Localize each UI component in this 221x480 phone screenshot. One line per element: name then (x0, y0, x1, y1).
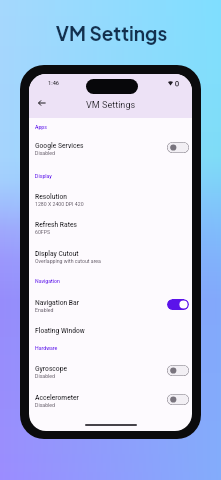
button[interactable]: Navigation Bar (29, 293, 192, 314)
staticText: Google Services (35, 142, 84, 150)
button[interactable]: Switch off (167, 394, 189, 405)
button[interactable]: Google Services (29, 136, 192, 157)
staticText: Floating Window (35, 327, 85, 335)
button[interactable]: Switch on (167, 299, 189, 310)
button[interactable]: Resolution (29, 187, 192, 208)
button[interactable]: Switch off (167, 142, 189, 153)
staticText: Disabled (35, 402, 56, 408)
button[interactable]: Back (33, 94, 51, 112)
staticText: Hardware (35, 345, 58, 351)
button[interactable]: Switch off (167, 365, 189, 376)
staticText: Display Cutout (35, 250, 79, 258)
staticText: VM Settings (1, 21, 221, 45)
staticText: VM Settings (86, 100, 136, 111)
button[interactable]: Gyroscope (29, 359, 192, 380)
staticText: 1:46 (48, 80, 60, 87)
staticText: Overlapping with cutout area (35, 258, 101, 264)
staticText: Disabled (35, 150, 56, 156)
staticText: 60FPS (35, 229, 51, 235)
button[interactable]: Floating Window (29, 321, 192, 335)
button[interactable]: Refresh Rates (29, 215, 192, 236)
staticText: Accelerometer (35, 394, 79, 402)
staticText: Display (35, 173, 52, 179)
staticText: Navigation (35, 278, 60, 284)
staticText: Enabled (35, 307, 54, 313)
staticText: Resolution (35, 193, 67, 201)
staticText: Disabled (35, 373, 56, 379)
staticText: Gyroscope (35, 365, 67, 373)
staticText: Navigation Bar (35, 299, 80, 307)
button[interactable]: Display Cutout (29, 244, 192, 265)
staticText: 1280 X 2400 DPI 420 (35, 201, 84, 207)
staticText: Apps (35, 124, 47, 130)
button[interactable]: Accelerometer (29, 388, 192, 409)
staticText: Refresh Rates (35, 221, 77, 229)
